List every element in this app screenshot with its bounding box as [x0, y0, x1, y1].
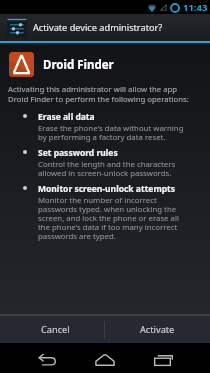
staticText: Erase the phone's data without warning b… — [38, 123, 184, 143]
staticText: Activate device administrator? — [33, 21, 163, 34]
button[interactable]: Activate — [105, 316, 210, 343]
staticText: Activate — [140, 323, 175, 336]
staticText: Set password rules — [38, 147, 118, 159]
button[interactable] — [92, 347, 118, 373]
staticText: Monitor screen-unlock attempts — [38, 183, 176, 195]
staticText: Droid Finder — [43, 57, 114, 73]
staticText: Control the length and the characters al… — [38, 159, 176, 179]
button[interactable] — [150, 347, 176, 373]
staticText: Erase all data — [38, 111, 95, 123]
staticText: Monitor the number of incorrect password… — [38, 195, 179, 242]
staticText: 11:43 — [183, 1, 208, 14]
button[interactable] — [34, 347, 60, 373]
staticText: Activating this administrator will allow… — [8, 84, 189, 104]
button[interactable]: Cancel — [0, 316, 104, 343]
staticText: Cancel — [41, 323, 70, 336]
